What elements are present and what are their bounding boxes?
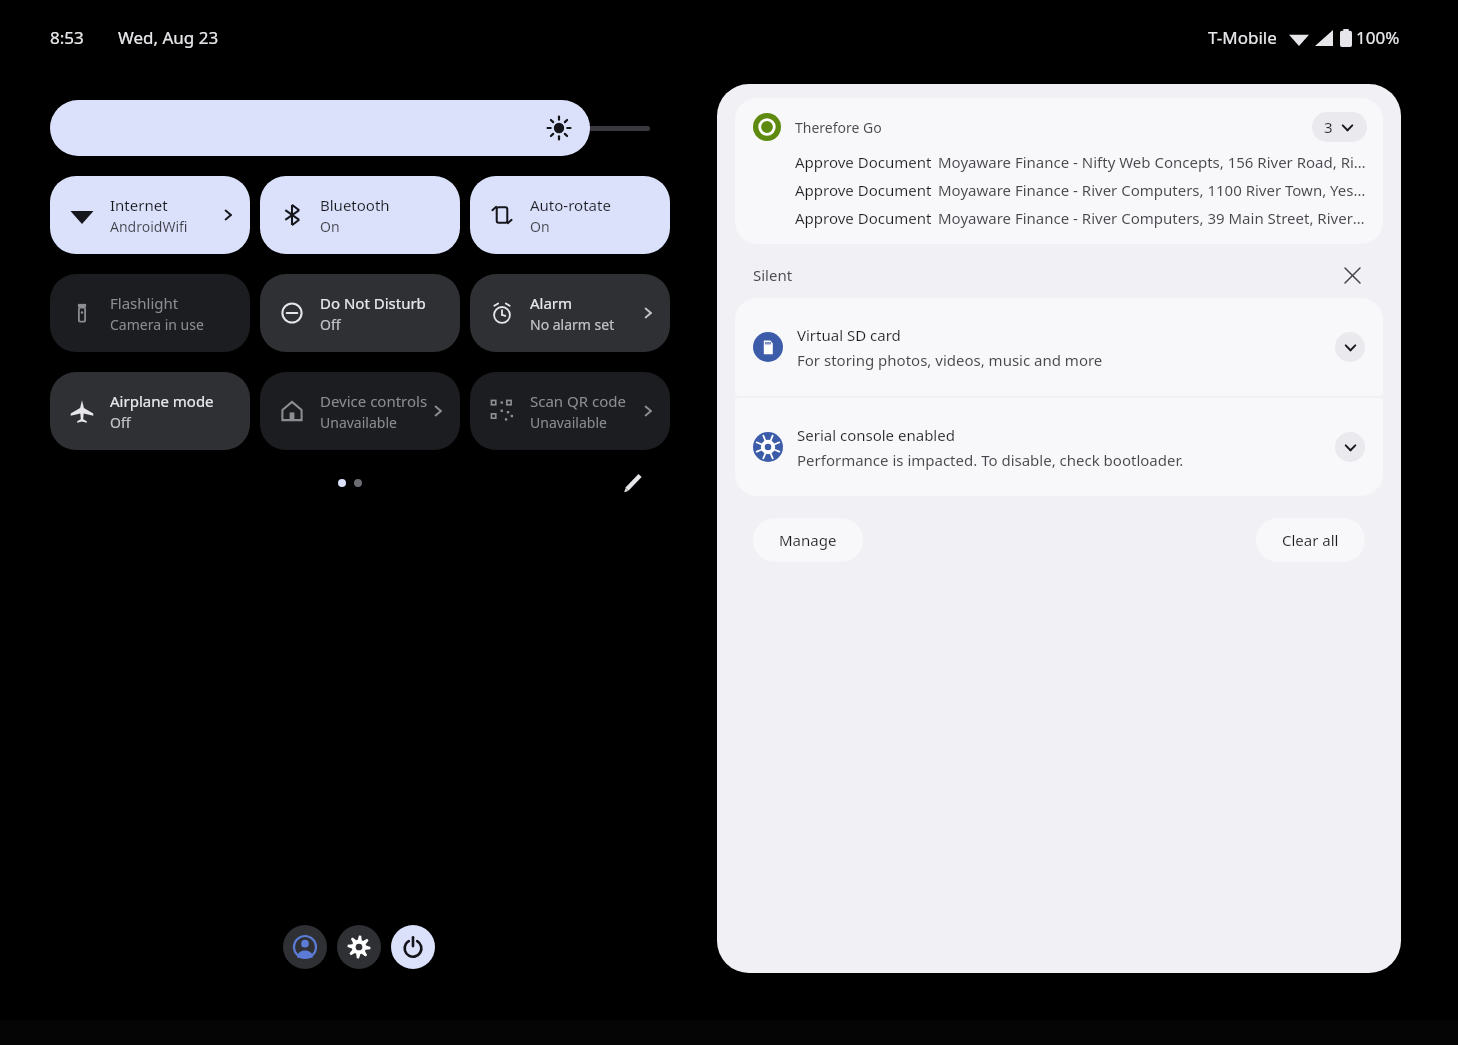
button[interactable]: Power (391, 925, 435, 969)
button[interactable]: Clear all (1256, 518, 1365, 562)
staticText: Virtual SD card (797, 325, 901, 345)
staticText: Device controls (320, 391, 428, 411)
staticText: Approve Document (795, 180, 932, 200)
button[interactable]: Serial console enabled (735, 398, 1383, 496)
button[interactable]: Edit tiles (616, 466, 650, 500)
button[interactable]: Expand (1335, 432, 1365, 462)
button[interactable]: 3 (1312, 112, 1367, 142)
staticText: Airplane mode (110, 391, 214, 411)
button[interactable]: Airplane mode (50, 372, 250, 450)
staticText: Do Not Disturb (320, 293, 426, 313)
staticText: Moyaware Finance - Nifty Web Concepts, 1… (938, 152, 1367, 172)
staticText: Flashlight (110, 293, 179, 313)
staticText: Moyaware Finance - River Computers, 1100… (938, 180, 1367, 200)
staticText: Approve Document (795, 208, 932, 228)
button[interactable]: Scan QR code (470, 372, 670, 450)
staticText: Alarm (530, 293, 573, 313)
staticText: Auto-rotate (530, 195, 611, 215)
staticText: Silent (753, 265, 793, 285)
button[interactable]: Alarm (470, 274, 670, 352)
staticText: Performance is impacted. To disable, che… (797, 450, 1184, 470)
button[interactable]: Manage (753, 518, 863, 562)
staticText: On (320, 217, 340, 236)
staticText: Off (110, 413, 131, 432)
button[interactable]: Bluetooth (260, 176, 460, 254)
staticText: Unavailable (320, 413, 397, 432)
staticText: Scan QR code (530, 391, 626, 411)
button[interactable]: Brightness (50, 100, 590, 156)
button[interactable]: Do Not Disturb (260, 274, 460, 352)
button[interactable]: Flashlight (50, 274, 250, 352)
button[interactable]: Dismiss silent notifications (1339, 262, 1365, 288)
staticText: No alarm set (530, 315, 615, 334)
staticText: 8:53 (50, 26, 84, 49)
button[interactable]: User (283, 925, 327, 969)
staticText: On (530, 217, 550, 236)
staticText: Serial console enabled (797, 425, 955, 445)
staticText: Off (320, 315, 341, 334)
staticText: Manage (779, 530, 837, 550)
button[interactable]: Expand (1335, 332, 1365, 362)
staticText: Therefore Go (795, 118, 882, 137)
staticText: Internet (110, 195, 168, 215)
staticText: Moyaware Finance - River Computers, 39 M… (938, 208, 1367, 228)
staticText: Camera in use (110, 315, 204, 334)
staticText: Bluetooth (320, 195, 390, 215)
staticText: 3 (1324, 117, 1333, 137)
button[interactable]: Virtual SD card (735, 298, 1383, 396)
staticText: 100% (1356, 26, 1400, 49)
button[interactable]: Device controls (260, 372, 460, 450)
staticText: Unavailable (530, 413, 607, 432)
button[interactable]: Therefore Go (735, 98, 1383, 244)
staticText: T-Mobile (1208, 26, 1277, 49)
staticText: Wed, Aug 23 (118, 26, 219, 49)
staticText: Clear all (1282, 530, 1339, 550)
button[interactable]: Settings (337, 925, 381, 969)
button[interactable]: Internet (50, 176, 250, 254)
staticText: For storing photos, videos, music and mo… (797, 350, 1103, 370)
staticText: Approve Document (795, 152, 932, 172)
button[interactable]: Auto-rotate (470, 176, 670, 254)
staticText: AndroidWifi (110, 217, 188, 236)
